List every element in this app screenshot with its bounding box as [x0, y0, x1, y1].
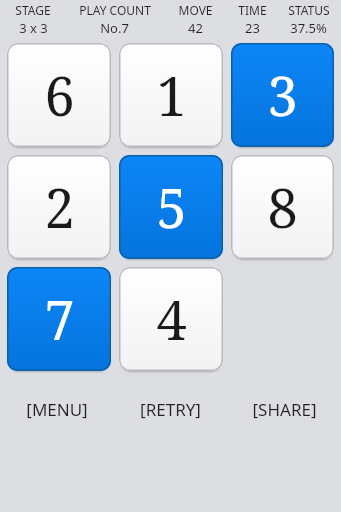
staticText: 3 [267, 58, 298, 132]
button[interactable]: 4 [119, 267, 223, 371]
staticText: 1 [156, 58, 187, 132]
button[interactable]: [SHARE] [227, 392, 341, 426]
staticText: STAGE [15, 2, 51, 18]
button[interactable]: [MENU] [0, 392, 113, 426]
staticText: [SHARE] [252, 398, 317, 421]
staticText: PLAY COUNT [79, 2, 151, 18]
staticText: 6 [44, 58, 75, 132]
staticText: TIME [238, 2, 267, 18]
staticText: 2 [44, 170, 75, 244]
staticText: 5 [156, 170, 187, 244]
staticText: 23 [245, 19, 260, 35]
staticText: 7 [44, 282, 75, 356]
staticText: No.7 [100, 19, 129, 35]
staticText: 37.5% [290, 19, 327, 35]
staticText: 4 [156, 282, 187, 356]
staticText: 42 [188, 19, 203, 35]
staticText: 8 [267, 170, 298, 244]
button[interactable]: 5 [119, 155, 223, 259]
staticText: [MENU] [26, 398, 88, 421]
button[interactable]: 1 [119, 43, 223, 147]
button[interactable]: 6 [7, 43, 111, 147]
button[interactable]: 7 [7, 267, 111, 371]
staticText: 3 x 3 [19, 19, 48, 35]
button[interactable]: 2 [7, 155, 111, 259]
button[interactable]: 8 [231, 155, 334, 259]
staticText: MOVE [178, 2, 213, 18]
staticText: STATUS [288, 2, 330, 18]
staticText: [RETRY] [140, 398, 201, 421]
button[interactable]: [RETRY] [113, 392, 227, 426]
button[interactable]: 3 [231, 43, 334, 147]
